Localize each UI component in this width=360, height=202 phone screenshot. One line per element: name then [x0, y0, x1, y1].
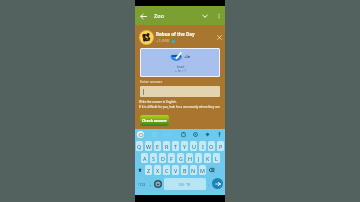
- button[interactable]: Keyboard settings: [137, 131, 144, 138]
- button[interactable]: X: [154, 165, 161, 175]
- button[interactable]: Z: [145, 165, 152, 175]
- button[interactable]: H: [186, 153, 193, 163]
- button[interactable]: W: [145, 141, 152, 151]
- staticText: Write the answer in English.: [139, 100, 177, 104]
- staticText: Rebus of the Day: [156, 31, 195, 37]
- button[interactable]: K: [204, 153, 211, 163]
- staticText: Enter answer: [140, 79, 163, 84]
- button[interactable]: I: [199, 141, 206, 151]
- staticText: Zoo: [154, 12, 165, 20]
- button[interactable]: P: [217, 141, 224, 151]
- button[interactable]: E: [154, 141, 161, 151]
- button[interactable]: B: [181, 165, 188, 175]
- staticText: R: [165, 143, 169, 150]
- button[interactable]: D: [159, 153, 166, 163]
- button[interactable]: U: [190, 141, 197, 151]
- staticText: D: [161, 155, 165, 162]
- staticText: +le: [184, 54, 191, 60]
- staticText: Y: [183, 143, 187, 150]
- staticText: J: [198, 155, 200, 162]
- button[interactable]: Y: [181, 141, 188, 151]
- staticText: E: [156, 143, 159, 150]
- button[interactable]: Check answer: [140, 115, 169, 126]
- staticText: B: [183, 167, 187, 174]
- button[interactable]: G: [177, 153, 184, 163]
- button[interactable]: Close: [214, 32, 224, 42]
- button[interactable]: A: [141, 153, 148, 163]
- button[interactable]: Back: [137, 10, 149, 22]
- staticText: I: [202, 143, 204, 150]
- button[interactable]: Voice input: [216, 131, 223, 138]
- staticText: A: [143, 155, 147, 162]
- staticText: N: [191, 167, 196, 174]
- button[interactable]: Settings: [192, 131, 199, 138]
- button[interactable]: F: [168, 153, 175, 163]
- staticText: T: [174, 143, 177, 150]
- button[interactable]: J: [195, 153, 202, 163]
- staticText: .: [208, 181, 210, 187]
- button[interactable]: Comma: [148, 178, 154, 190]
- staticText: Q: [137, 143, 142, 150]
- button[interactable]: [140, 86, 220, 97]
- button[interactable]: V: [172, 165, 179, 175]
- staticText: O: [209, 143, 214, 150]
- button[interactable]: R: [163, 141, 170, 151]
- button[interactable]: Shift: [135, 164, 144, 176]
- button[interactable]: M: [199, 165, 206, 175]
- button[interactable]: More options: [214, 11, 224, 21]
- button[interactable]: Emoji: [154, 180, 162, 188]
- staticText: +1,000: [156, 38, 170, 44]
- button[interactable]: Q: [136, 141, 143, 151]
- button[interactable]: T: [172, 141, 179, 151]
- button[interactable]: Period: [206, 178, 212, 190]
- staticText: S: [152, 155, 155, 162]
- button[interactable]: Space: [164, 178, 206, 190]
- button[interactable]: N: [190, 165, 197, 175]
- staticText: bowl + le = ?: [175, 64, 186, 73]
- button[interactable]: O: [208, 141, 215, 151]
- button[interactable]: C: [163, 165, 170, 175]
- staticText: V: [174, 167, 178, 174]
- button[interactable]: Theme: [204, 131, 211, 138]
- button[interactable]: L: [213, 153, 220, 163]
- staticText: G: [179, 155, 183, 162]
- staticText: ,: [150, 181, 152, 187]
- staticText: W: [146, 143, 152, 150]
- button[interactable]: ?123: [136, 178, 148, 190]
- button[interactable]: Stickers: [151, 131, 158, 138]
- button[interactable]: Expand: [199, 10, 211, 22]
- staticText: If it is difficult for you, look for a c…: [139, 105, 221, 109]
- button[interactable]: Clipboard: [180, 131, 187, 138]
- button[interactable]: Enter: [212, 178, 223, 189]
- button[interactable]: S: [150, 153, 157, 163]
- staticText: C: [165, 167, 169, 174]
- staticText: ?123: [138, 182, 146, 187]
- staticText: F: [170, 155, 173, 162]
- staticText: U: [192, 143, 196, 150]
- staticText: M: [200, 167, 205, 174]
- staticText: X: [156, 167, 160, 174]
- staticText: Z: [147, 167, 151, 174]
- staticText: H: [188, 155, 192, 162]
- staticText: EN · TR: [179, 182, 191, 187]
- staticText: P: [219, 143, 223, 150]
- staticText: Check answer: [142, 118, 167, 123]
- staticText: K: [206, 155, 210, 162]
- button[interactable]: Backspace: [207, 164, 216, 176]
- staticText: L: [215, 155, 218, 162]
